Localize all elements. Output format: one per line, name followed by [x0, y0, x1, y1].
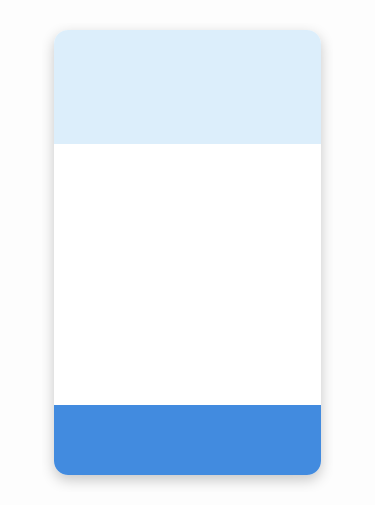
- button[interactable]: Continue: [54, 405, 321, 475]
